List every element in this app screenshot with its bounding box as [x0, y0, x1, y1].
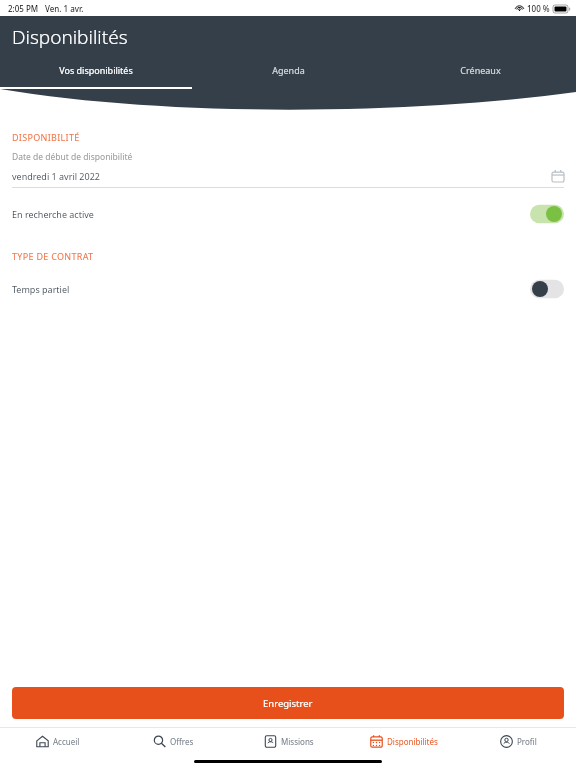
button[interactable]: Temps partiel [12, 278, 564, 300]
staticText: Créneaux [460, 64, 501, 76]
button[interactable]: Enregistrer [12, 687, 564, 719]
staticText: Profil [517, 736, 537, 747]
staticText: Date de début de disponibilité [12, 151, 133, 163]
staticText: En recherche active [12, 208, 530, 220]
staticText: Disponibilités [12, 24, 128, 50]
button[interactable]: Missions [231, 728, 346, 755]
button[interactable]: Accueil [0, 728, 116, 755]
staticText: Enregistrer [263, 697, 313, 710]
button[interactable]: Créneaux [384, 62, 576, 87]
other: Choisir une date [552, 170, 564, 182]
staticText: Disponibilités [387, 736, 438, 747]
button[interactable]: En recherche active [12, 203, 564, 225]
staticText: Temps partiel [12, 283, 530, 295]
staticText: Offres [170, 736, 194, 747]
staticText: 2:05 PM [8, 3, 39, 14]
staticText: Agenda [272, 64, 305, 76]
staticText: Vos disponibilités [59, 64, 133, 76]
staticText: DISPONIBILITÉ [12, 131, 80, 143]
button[interactable]: Vos disponibilités [0, 62, 192, 89]
staticText: Accueil [53, 736, 80, 747]
button[interactable]: Offres [116, 728, 231, 755]
staticText: Ven. 1 avr. [45, 3, 84, 14]
button[interactable]: vendredi 1 avril 2022 [12, 170, 564, 182]
staticText: 100 % [527, 3, 550, 14]
staticText: Missions [281, 736, 314, 747]
button[interactable]: Disponibilités [346, 728, 461, 755]
button[interactable]: Profil [461, 728, 576, 755]
staticText: vendredi 1 avril 2022 [12, 170, 552, 182]
staticText: TYPE DE CONTRAT [12, 250, 94, 262]
button[interactable]: Agenda [192, 62, 384, 87]
